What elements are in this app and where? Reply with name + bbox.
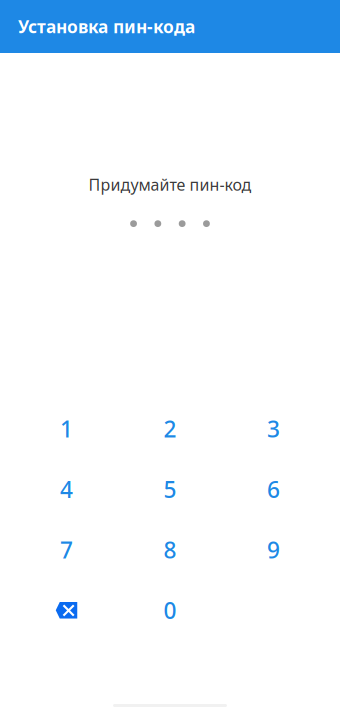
staticText: 5 [163,474,176,504]
button[interactable]: 9 [222,519,325,580]
staticText: 2 [163,414,176,444]
staticText: 6 [267,474,280,504]
staticText: 4 [60,474,73,504]
button[interactable]: 3 [222,398,325,459]
staticText: 7 [60,535,73,565]
button[interactable]: 5 [118,459,222,519]
staticText: 3 [267,414,280,444]
button[interactable]: Delete [15,580,118,640]
staticText: 0 [163,595,176,625]
button[interactable]: 1 [15,398,118,459]
button[interactable]: 7 [15,519,118,580]
staticText: 1 [60,414,73,444]
staticText: 9 [267,535,280,565]
button[interactable]: 4 [15,459,118,519]
button[interactable]: 8 [118,519,222,580]
button[interactable]: 0 [118,580,222,640]
staticText: Установка пин-кода [18,15,195,38]
staticText: 8 [163,535,176,565]
staticText: Придумайте пин-код [88,174,251,195]
button[interactable]: 2 [118,398,222,459]
button[interactable]: 6 [222,459,325,519]
